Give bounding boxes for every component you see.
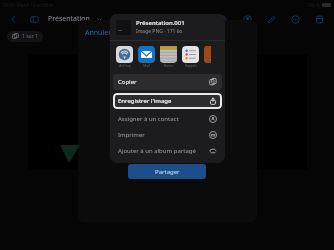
staticText: Annuler [85,28,112,38]
button[interactable]: AirDrop [116,46,133,68]
button[interactable]: Mail [138,46,155,68]
button[interactable]: Copier [113,74,222,90]
button[interactable]: Media [203,13,216,26]
button[interactable]: Collaborate [241,13,254,26]
staticText: Mail [143,64,150,68]
button[interactable]: Sidebar [28,13,41,26]
button[interactable]: More [289,13,302,26]
staticText: 1 sur 1 [22,33,38,40]
staticText: Ajouter à un album partagé [118,147,196,155]
button[interactable]: Back [7,13,20,26]
button[interactable]: Notes [160,46,177,68]
staticText: Image PNG · 171 ko [136,28,183,35]
button[interactable]: Assigner à un contact [110,111,225,127]
button[interactable]: Table [131,13,144,26]
button[interactable]: Rappels [182,46,199,68]
button[interactable]: Imprimer [110,127,225,143]
button[interactable]: Format [313,13,326,26]
button[interactable]: Insert [155,13,168,26]
button[interactable]: Pen [265,13,278,26]
staticText: Présentation [48,14,90,24]
staticText: Rappels [185,64,197,68]
button[interactable]: Shapes [179,13,192,26]
staticText: Imprimer [118,131,145,139]
staticText: 100 % [307,2,320,8]
staticText: Enregistrer l'image [118,97,172,105]
button[interactable]: Annuler [82,26,115,40]
staticText: Présentation.001 [136,19,185,27]
button[interactable]: Présentation.001 [110,14,225,40]
button[interactable]: Ajouter à un album partagé [110,143,225,159]
staticText: Partager [155,168,180,176]
button[interactable]: 1 sur 1 [7,31,43,42]
staticText: Notes [164,64,173,68]
staticText: 09:45 Mardi 18 octobre [3,2,53,8]
button[interactable]: Partager [128,164,206,179]
button[interactable]: Document options [93,13,106,26]
staticText: Assigner à un contact [118,115,179,123]
button[interactable]: Enregistrer l'image [113,93,222,109]
staticText: Copier [118,78,137,86]
button[interactable]: Play [107,13,120,26]
button[interactable]: Share [217,13,230,26]
staticText: AirDrop [119,64,131,68]
